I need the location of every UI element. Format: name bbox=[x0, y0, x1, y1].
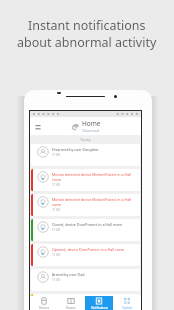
staticText: Disarmed by user Daughter bbox=[52, 147, 99, 152]
staticText: 11:00 bbox=[52, 278, 61, 282]
button[interactable]: Menu bbox=[33, 121, 43, 131]
staticText: 11:00 bbox=[52, 183, 61, 187]
staticText: Control bbox=[122, 306, 132, 310]
staticText: Instant notifications bbox=[28, 17, 146, 34]
staticText: Armed by user Dad bbox=[52, 272, 85, 277]
staticText: room bbox=[52, 202, 62, 207]
staticText: Devices bbox=[39, 306, 49, 310]
staticText: Opened, device DoorProtect in a Hall roo… bbox=[52, 247, 125, 252]
button[interactable]: Rooms bbox=[57, 296, 85, 310]
button[interactable]: Tampered, device DoorProtect in a Hall bbox=[31, 294, 140, 307]
staticText: about abnormal activity bbox=[17, 34, 157, 51]
button[interactable]: Disarmed by user Daughter bbox=[31, 144, 140, 166]
button[interactable]: Motion detected device MotionProtect in … bbox=[31, 169, 140, 191]
staticText: room bbox=[52, 177, 62, 182]
staticText: Today bbox=[80, 137, 92, 142]
button[interactable]: Devices bbox=[30, 296, 57, 310]
staticText: 11:00 bbox=[52, 253, 61, 257]
staticText: Home bbox=[82, 119, 101, 128]
staticText: Motion detected device MotionProtect in … bbox=[52, 197, 132, 202]
staticText: Notifications bbox=[91, 306, 108, 310]
staticText: Motion detected device MotionProtect in … bbox=[52, 172, 132, 177]
staticText: Closed, device DoorProtect in a Hall roo… bbox=[52, 222, 122, 227]
button[interactable]: Motion detected device MotionProtect in … bbox=[31, 194, 140, 216]
staticText: Disarmed bbox=[82, 128, 100, 133]
button[interactable]: Armed by user Dad bbox=[31, 269, 140, 291]
staticText: 11:00 bbox=[52, 208, 61, 212]
staticText: Tampered, device DoorProtect in a Hall bbox=[52, 297, 118, 302]
staticText: 11:00 bbox=[52, 153, 61, 157]
button[interactable]: Opened, device DoorProtect in a Hall roo… bbox=[31, 244, 140, 266]
staticText: Rooms bbox=[66, 306, 76, 310]
button[interactable]: Control bbox=[113, 296, 141, 310]
button[interactable]: Closed, device DoorProtect in a Hall roo… bbox=[31, 219, 140, 241]
staticText: 11:00 bbox=[52, 228, 61, 232]
button[interactable]: Notifications bbox=[85, 296, 113, 310]
